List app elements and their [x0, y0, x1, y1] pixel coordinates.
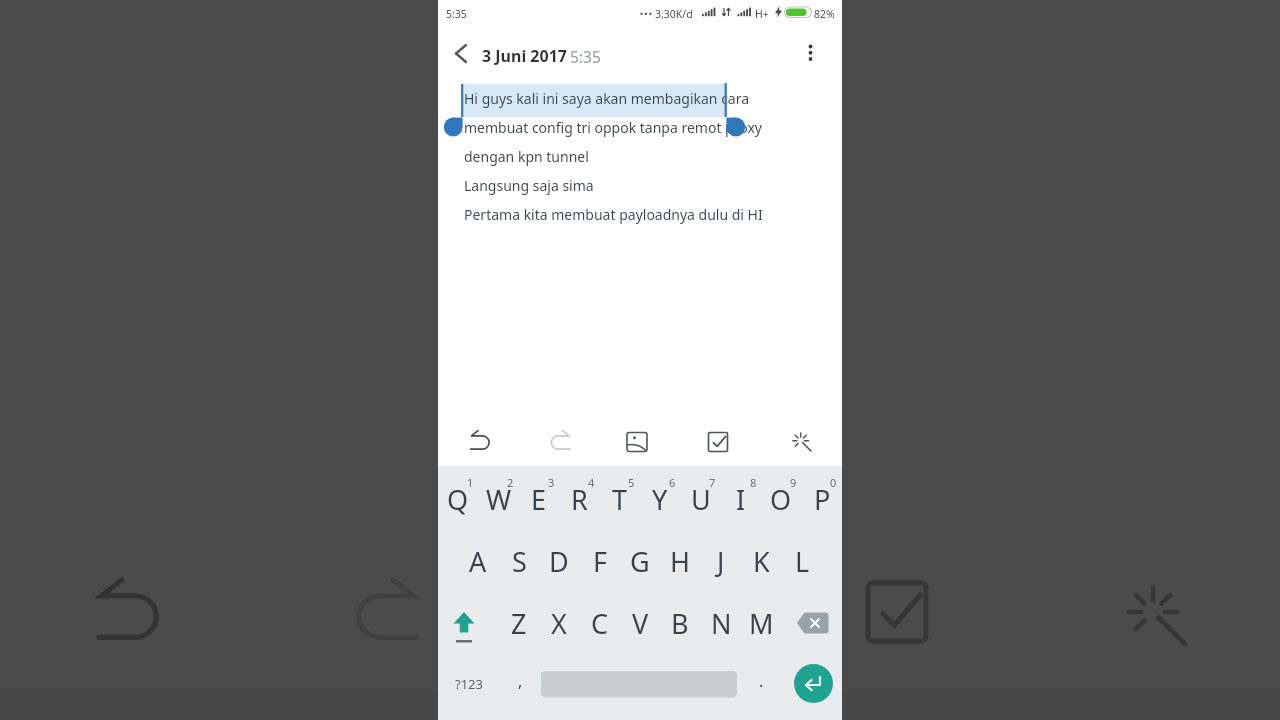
staticText: P — [814, 481, 831, 518]
staticText: X — [551, 605, 567, 642]
staticText: 5:35 — [570, 46, 601, 67]
button[interactable]: M — [741, 603, 781, 643]
button[interactable]: U — [681, 479, 721, 519]
staticText: 3,30K/d — [655, 7, 693, 21]
button[interactable]: K — [741, 541, 781, 581]
staticText: 0 — [830, 475, 837, 490]
staticText: Y — [652, 481, 668, 518]
button[interactable]: W — [479, 479, 519, 519]
staticText: 1 — [467, 475, 474, 490]
button[interactable]: S — [499, 541, 539, 581]
staticText: N — [711, 605, 732, 642]
button[interactable] — [794, 664, 834, 704]
button[interactable] — [540, 422, 580, 462]
button[interactable]: L — [782, 541, 822, 581]
staticText: 7 — [709, 475, 716, 490]
staticText: Q — [447, 481, 469, 518]
button[interactable]: B — [660, 603, 700, 643]
button[interactable]: O — [761, 479, 801, 519]
button[interactable]: H — [660, 541, 700, 581]
staticText: C — [591, 605, 609, 642]
button[interactable] — [448, 38, 478, 68]
staticText: L — [795, 543, 810, 580]
staticText: Hi guys kali ini saya akan membagikan ca… — [464, 89, 750, 108]
button[interactable]: E — [519, 479, 559, 519]
staticText: ?123 — [455, 675, 483, 693]
button[interactable] — [541, 671, 737, 698]
button[interactable]: G — [620, 541, 660, 581]
staticText: U — [691, 481, 711, 518]
button[interactable]: 6 — [652, 462, 692, 502]
staticText: I — [736, 481, 746, 518]
button[interactable] — [617, 422, 657, 462]
staticText: A — [469, 543, 487, 580]
button[interactable]: ?123 — [449, 664, 489, 704]
staticText: M — [749, 605, 774, 642]
button[interactable]: Y — [640, 479, 680, 519]
button[interactable]: 4 — [571, 462, 611, 502]
staticText: 2 — [507, 475, 514, 490]
button[interactable]: A — [458, 541, 498, 581]
staticText: 3 — [548, 475, 555, 490]
button[interactable]: 9 — [773, 462, 813, 502]
staticText: E — [531, 481, 547, 518]
button[interactable]: F — [580, 541, 620, 581]
button[interactable] — [460, 422, 500, 462]
staticText: 5 — [628, 475, 635, 490]
button[interactable] — [698, 422, 738, 462]
button[interactable]: J — [701, 541, 741, 581]
button[interactable] — [782, 422, 822, 462]
button[interactable]: 1 — [450, 462, 490, 502]
button[interactable]: Z — [499, 603, 539, 643]
button[interactable]: V — [620, 603, 660, 643]
staticText: Z — [511, 605, 527, 642]
button[interactable]: Q — [438, 479, 478, 519]
staticText: T — [612, 481, 628, 518]
staticText: , — [518, 670, 523, 692]
button[interactable]: P — [802, 479, 842, 519]
staticText: W — [486, 481, 512, 518]
staticText: J — [717, 543, 725, 580]
staticText: membuat config tri oppok tanpa remot pro… — [464, 118, 762, 137]
staticText: 82% — [814, 7, 835, 21]
staticText: dengan kpn tunnel — [464, 147, 589, 166]
button[interactable]: 3 — [531, 462, 571, 502]
button[interactable]: 8 — [733, 462, 773, 502]
button[interactable]: 7 — [692, 462, 732, 502]
staticText: H — [670, 543, 691, 580]
button[interactable]: , — [500, 661, 540, 701]
button[interactable]: T — [600, 479, 640, 519]
staticText: 4 — [588, 475, 595, 490]
staticText: F — [593, 543, 608, 580]
staticText: 6 — [669, 475, 676, 490]
button[interactable]: R — [559, 479, 599, 519]
staticText: G — [630, 543, 650, 580]
staticText: 3 Juni 2017 — [482, 45, 567, 67]
button[interactable]: 0 — [813, 462, 853, 502]
button[interactable]: N — [701, 603, 741, 643]
staticText: O — [770, 481, 792, 518]
button[interactable]: 2 — [490, 462, 530, 502]
staticText: K — [753, 543, 770, 580]
staticText: 9 — [790, 475, 797, 490]
staticText: Pertama kita membuat payloadnya dulu di … — [464, 205, 763, 224]
staticText: D — [549, 543, 569, 580]
button[interactable] — [794, 603, 834, 643]
staticText: 8 — [750, 475, 757, 490]
staticText: S — [512, 543, 527, 580]
staticText: H+ — [755, 7, 769, 21]
staticText: V — [632, 605, 649, 642]
button[interactable]: D — [539, 541, 579, 581]
staticText: B — [671, 605, 689, 642]
button[interactable] — [444, 603, 484, 643]
button[interactable] — [795, 38, 825, 68]
staticText: 5:35 — [446, 7, 467, 21]
button[interactable]: 5 — [611, 462, 651, 502]
staticText: R — [571, 481, 588, 518]
staticText: . — [759, 670, 764, 692]
button[interactable]: . — [741, 661, 781, 701]
staticText: Langsung saja sima — [464, 176, 594, 195]
button[interactable]: I — [721, 479, 761, 519]
button[interactable]: C — [580, 603, 620, 643]
button[interactable]: X — [539, 603, 579, 643]
